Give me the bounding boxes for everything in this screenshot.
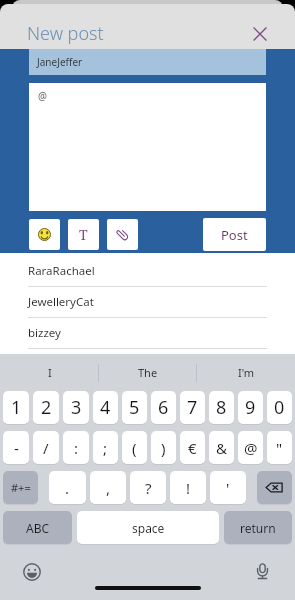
staticText: @	[38, 89, 47, 103]
button[interactable]: 6	[151, 391, 176, 424]
staticText: 4	[100, 395, 111, 420]
button[interactable]: return	[224, 511, 292, 544]
button[interactable]: #+=	[3, 471, 38, 504]
button[interactable]	[257, 471, 292, 504]
staticText: 6	[158, 395, 169, 420]
button[interactable]: 8	[209, 391, 234, 424]
button[interactable]: :	[63, 431, 89, 464]
staticText: 3	[71, 395, 82, 420]
staticText: -	[14, 438, 19, 458]
button[interactable]: 4	[93, 391, 118, 424]
staticText: T	[79, 225, 88, 244]
button[interactable]: )	[151, 431, 176, 464]
staticText: #+=	[11, 480, 31, 495]
staticText: bizzey	[28, 325, 61, 341]
staticText: 2	[41, 395, 52, 420]
staticText: The	[138, 365, 158, 380]
staticText: return	[240, 520, 276, 536]
staticText: RaraRachael	[28, 263, 95, 279]
button[interactable]: 0	[267, 391, 292, 424]
staticText: '	[226, 478, 230, 498]
staticText: @	[244, 438, 258, 458]
button[interactable]: Text formatting	[68, 219, 99, 250]
button[interactable]: Voice input	[253, 562, 272, 581]
staticText: 0	[274, 395, 285, 420]
button[interactable]: 3	[63, 391, 89, 424]
staticText: 8	[216, 395, 227, 420]
button[interactable]: JewelleryCat	[28, 287, 267, 318]
staticText: ,	[106, 478, 111, 498]
button[interactable]: 7	[180, 391, 205, 424]
staticText: 9	[245, 395, 256, 420]
button[interactable]: The	[99, 354, 197, 391]
staticText: :	[74, 438, 79, 458]
button[interactable]: Insert emoji	[29, 219, 60, 250]
button[interactable]: 5	[122, 391, 147, 424]
button[interactable]: bizzey	[28, 318, 267, 349]
button[interactable]: I'm	[197, 354, 295, 391]
button[interactable]: 1	[3, 391, 29, 424]
staticText: &	[216, 438, 227, 458]
staticText: 1	[11, 395, 22, 420]
button[interactable]: Post	[203, 218, 266, 251]
button[interactable]: ABC	[3, 511, 72, 544]
button[interactable]: space	[77, 511, 219, 544]
staticText: JaneJeffer	[37, 55, 83, 69]
button[interactable]: -	[3, 431, 29, 464]
button[interactable]: Emoji keyboard	[22, 562, 41, 581]
button[interactable]: @	[29, 83, 266, 211]
button[interactable]: &	[209, 431, 234, 464]
staticText: €	[188, 438, 197, 458]
staticText: I	[48, 365, 52, 380]
staticText: )	[161, 438, 166, 458]
button[interactable]: ?	[130, 471, 166, 504]
button[interactable]: 2	[33, 391, 59, 424]
staticText: (	[132, 438, 137, 458]
button[interactable]: .	[49, 471, 86, 504]
staticText: "	[276, 438, 283, 458]
button[interactable]: I	[0, 354, 99, 391]
staticText: ?	[145, 478, 152, 498]
button[interactable]: (	[122, 431, 147, 464]
button[interactable]: Close	[249, 23, 271, 45]
button[interactable]: @	[238, 431, 263, 464]
button[interactable]: Attach file	[107, 219, 138, 250]
button[interactable]: "	[267, 431, 292, 464]
staticText: !	[186, 478, 191, 498]
staticText: space	[132, 520, 165, 536]
staticText: 7	[187, 395, 198, 420]
button[interactable]: 9	[238, 391, 263, 424]
button[interactable]: ,	[90, 471, 126, 504]
staticText: New post	[27, 21, 104, 46]
button[interactable]: !	[170, 471, 206, 504]
staticText: ;	[103, 438, 108, 458]
button[interactable]: RaraRachael	[28, 256, 267, 287]
button[interactable]: €	[180, 431, 205, 464]
staticText: ABC	[26, 520, 50, 536]
button[interactable]: /	[33, 431, 59, 464]
staticText: /	[43, 438, 49, 458]
staticText: .	[65, 478, 70, 498]
staticText: JewelleryCat	[28, 294, 94, 310]
staticText: I'm	[238, 365, 255, 380]
button[interactable]: JaneJeffer	[29, 49, 266, 75]
button[interactable]: '	[210, 471, 246, 504]
button[interactable]: ;	[93, 431, 118, 464]
staticText: Post	[221, 226, 248, 244]
staticText: 5	[129, 395, 140, 420]
